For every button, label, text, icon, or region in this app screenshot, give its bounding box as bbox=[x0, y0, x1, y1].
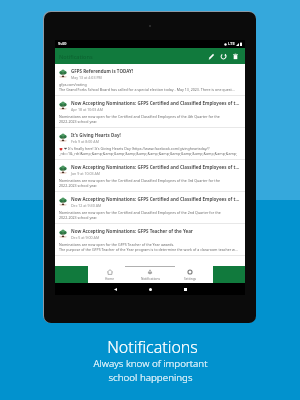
staticText: Feb 9 at 8:00 AM bbox=[71, 139, 99, 144]
button[interactable]: GFPS Referendum is TODAY! bbox=[55, 64, 245, 96]
staticText: 9:40 bbox=[58, 41, 67, 47]
staticText: The purpose of the GFPS Teacher of the Y… bbox=[59, 247, 238, 252]
staticText: Jan 9 at 10:03 AM bbox=[71, 171, 101, 176]
staticText: 2022-2023 school year. bbox=[59, 183, 98, 188]
button[interactable]: Now Accepting Nominations: GFPS Teacher … bbox=[55, 224, 245, 256]
staticText: gfps.com/voting bbox=[59, 82, 87, 87]
staticText: Now Accepting Nominations: GFPS Certifie… bbox=[71, 164, 242, 170]
button[interactable]: Delete bbox=[231, 52, 240, 61]
staticText: _rdc=1&_rdr)&amp;&amp;&amp;&amp;&amp;&am… bbox=[59, 151, 237, 156]
staticText: LTE bbox=[228, 41, 235, 47]
button[interactable]: Now Accepting Nominations: GFPS Certifie… bbox=[55, 192, 245, 224]
staticText: Nominations are now open for the Certifi… bbox=[59, 178, 220, 183]
staticText: 2022-2023 school year. bbox=[59, 215, 98, 220]
staticText: 2022-2023 school year. bbox=[59, 119, 98, 124]
staticText: Nominations are now open for the GFPS Te… bbox=[59, 242, 175, 247]
staticText: It's Giving Hearts Day! bbox=[71, 132, 121, 138]
staticText: Home bbox=[105, 277, 115, 281]
button[interactable]: Edit bbox=[207, 52, 216, 61]
staticText: Notifications bbox=[59, 53, 93, 60]
button[interactable]: Refresh bbox=[219, 52, 228, 61]
button[interactable]: Now Accepting Nominations: GFPS Certifie… bbox=[55, 160, 245, 192]
staticText: ❤ It's finally here! It's Giving Hearts … bbox=[64, 146, 210, 151]
button[interactable]: Home bbox=[90, 266, 130, 283]
staticText: Notifications bbox=[141, 277, 160, 281]
button[interactable]: It's Giving Hearts Day! bbox=[55, 128, 245, 160]
button[interactable]: Notifications bbox=[130, 266, 170, 283]
button[interactable]: Recents bbox=[181, 285, 189, 293]
staticText: Nominations are now open for the Certifi… bbox=[59, 114, 220, 119]
staticText: May 13 at 4:03 PM bbox=[71, 75, 102, 80]
staticText: The Grand Forks School Board has called … bbox=[59, 87, 235, 92]
staticText: Always know of important school happenin… bbox=[93, 357, 208, 384]
staticText: Dec 12 at 9:30 AM bbox=[71, 203, 102, 208]
button[interactable]: Back bbox=[111, 285, 119, 293]
staticText: Nominations are now open for the Certifi… bbox=[59, 210, 221, 215]
staticText: Settings bbox=[184, 277, 197, 281]
staticText: Apr 18 at 10:03 AM bbox=[71, 107, 103, 112]
staticText: GFPS Referendum is TODAY! bbox=[71, 68, 134, 74]
staticText: Notifications bbox=[107, 336, 198, 358]
staticText: Now Accepting Nominations: GFPS Teacher … bbox=[71, 228, 193, 234]
button[interactable]: Now Accepting Nominations: GFPS Certifie… bbox=[55, 96, 245, 128]
staticText: Now Accepting Nominations: GFPS Certifie… bbox=[71, 100, 242, 106]
staticText: Now Accepting Nominations: GFPS Certifie… bbox=[71, 196, 242, 202]
staticText: Dec 5 at 9:00 AM bbox=[71, 235, 100, 240]
button[interactable]: Settings bbox=[170, 266, 210, 283]
button[interactable]: Home bbox=[146, 285, 154, 293]
